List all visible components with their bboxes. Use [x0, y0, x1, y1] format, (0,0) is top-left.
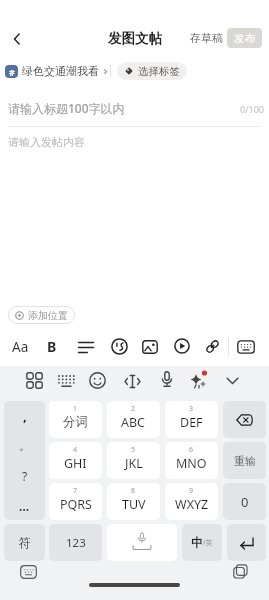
button[interactable]: 2 — [107, 401, 160, 438]
staticText: ABC — [121, 414, 146, 431]
staticText: 3 — [189, 404, 194, 414]
button[interactable]: 4 — [49, 442, 102, 479]
staticText: 分词 — [63, 414, 88, 430]
button[interactable] — [223, 401, 266, 438]
button[interactable]: 7 — [49, 483, 102, 520]
staticText: MNO — [176, 455, 207, 472]
staticText: Aa — [12, 338, 29, 356]
button[interactable] — [8, 30, 26, 48]
staticText: … — [19, 498, 30, 514]
staticText: 。 — [19, 439, 31, 453]
button[interactable]: 存草稿 — [190, 31, 223, 45]
button[interactable] — [227, 524, 266, 561]
button[interactable]: 中 — [182, 524, 222, 561]
staticText: /英 — [203, 538, 213, 548]
button[interactable] — [107, 524, 177, 561]
button[interactable]: 1 — [49, 401, 102, 438]
button[interactable]: # — [5, 62, 109, 80]
staticText: PQRS — [60, 496, 92, 513]
button[interactable]: 3 — [165, 401, 218, 438]
staticText: 8 — [131, 486, 136, 496]
button[interactable]: 0 — [223, 483, 266, 520]
staticText: 123 — [66, 535, 86, 551]
staticText: 4 — [73, 445, 78, 455]
staticText: 9 — [189, 486, 194, 496]
staticText: 7 — [73, 486, 78, 496]
staticText: 重输 — [234, 454, 256, 468]
staticText: 请输入发帖内容 — [8, 135, 85, 149]
button[interactable]: 6 — [165, 442, 218, 479]
button[interactable]: 8 — [107, 483, 160, 520]
staticText: JKL — [125, 455, 143, 472]
button[interactable]: 添加位置 — [8, 306, 75, 324]
staticText: 6 — [189, 445, 194, 455]
button[interactable]: 9 — [165, 483, 218, 520]
staticText: 0 — [241, 493, 249, 511]
staticText: 5 — [131, 445, 136, 455]
button[interactable]: 5 — [107, 442, 160, 479]
staticText: 选择标签 — [138, 65, 180, 78]
staticText: DEF — [180, 414, 203, 431]
staticText: 添加位置 — [28, 309, 68, 322]
staticText: 2 — [131, 404, 136, 414]
staticText: 请输入标题100字以内 — [8, 100, 125, 116]
staticText: 0/100 — [240, 103, 264, 115]
staticText: GHI — [64, 455, 87, 472]
staticText: 符 — [19, 535, 31, 550]
button[interactable]: 选择标签 — [117, 62, 187, 80]
staticText: B — [47, 337, 57, 356]
staticText: 中 — [191, 535, 203, 550]
staticText: 绿色交通潮我看 — [22, 64, 99, 78]
button[interactable]: , — [4, 401, 45, 520]
staticText: 存草稿 — [190, 31, 223, 45]
staticText: # — [9, 66, 15, 78]
staticText: 发布 — [234, 32, 255, 45]
button[interactable]: 123 — [49, 524, 102, 561]
button[interactable]: 符 — [4, 524, 45, 561]
staticText: 1 — [73, 404, 78, 414]
staticText: 发图文帖 — [108, 30, 162, 47]
staticText: WXYZ — [175, 496, 209, 513]
staticText: TUV — [122, 496, 146, 513]
button[interactable]: 重输 — [223, 442, 266, 479]
button[interactable]: 发布 — [227, 28, 262, 48]
staticText: ? — [22, 468, 28, 484]
staticText: , — [23, 407, 27, 425]
